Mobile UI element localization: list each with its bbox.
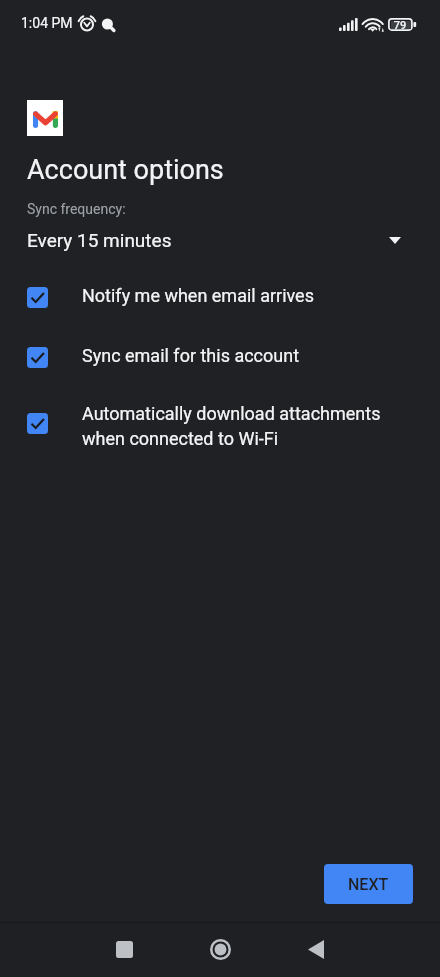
staticText: Every 15 minutes: [27, 229, 172, 251]
button[interactable]: Expand sync frequency: [389, 237, 401, 244]
button[interactable]: Sync email for this account: [19, 338, 409, 377]
button[interactable]: NEXT: [324, 864, 413, 904]
staticText: Notify me when email arrives: [82, 285, 314, 306]
button[interactable]: Notify me when email arrives: [19, 278, 409, 317]
staticText: Automatically download attachments when …: [82, 403, 381, 449]
staticText: Account options: [27, 154, 224, 186]
staticText: 79: [388, 19, 412, 32]
button[interactable]: Recent apps: [100, 925, 148, 973]
button[interactable]: Back: [292, 925, 340, 973]
staticText: Sync frequency:: [27, 201, 126, 217]
staticText: 1:04 PM: [21, 15, 73, 31]
staticText: Sync email for this account: [82, 345, 300, 366]
staticText: NEXT: [348, 875, 389, 894]
button[interactable]: Home: [196, 925, 244, 973]
button[interactable]: Automatically download attachments when …: [19, 404, 409, 468]
